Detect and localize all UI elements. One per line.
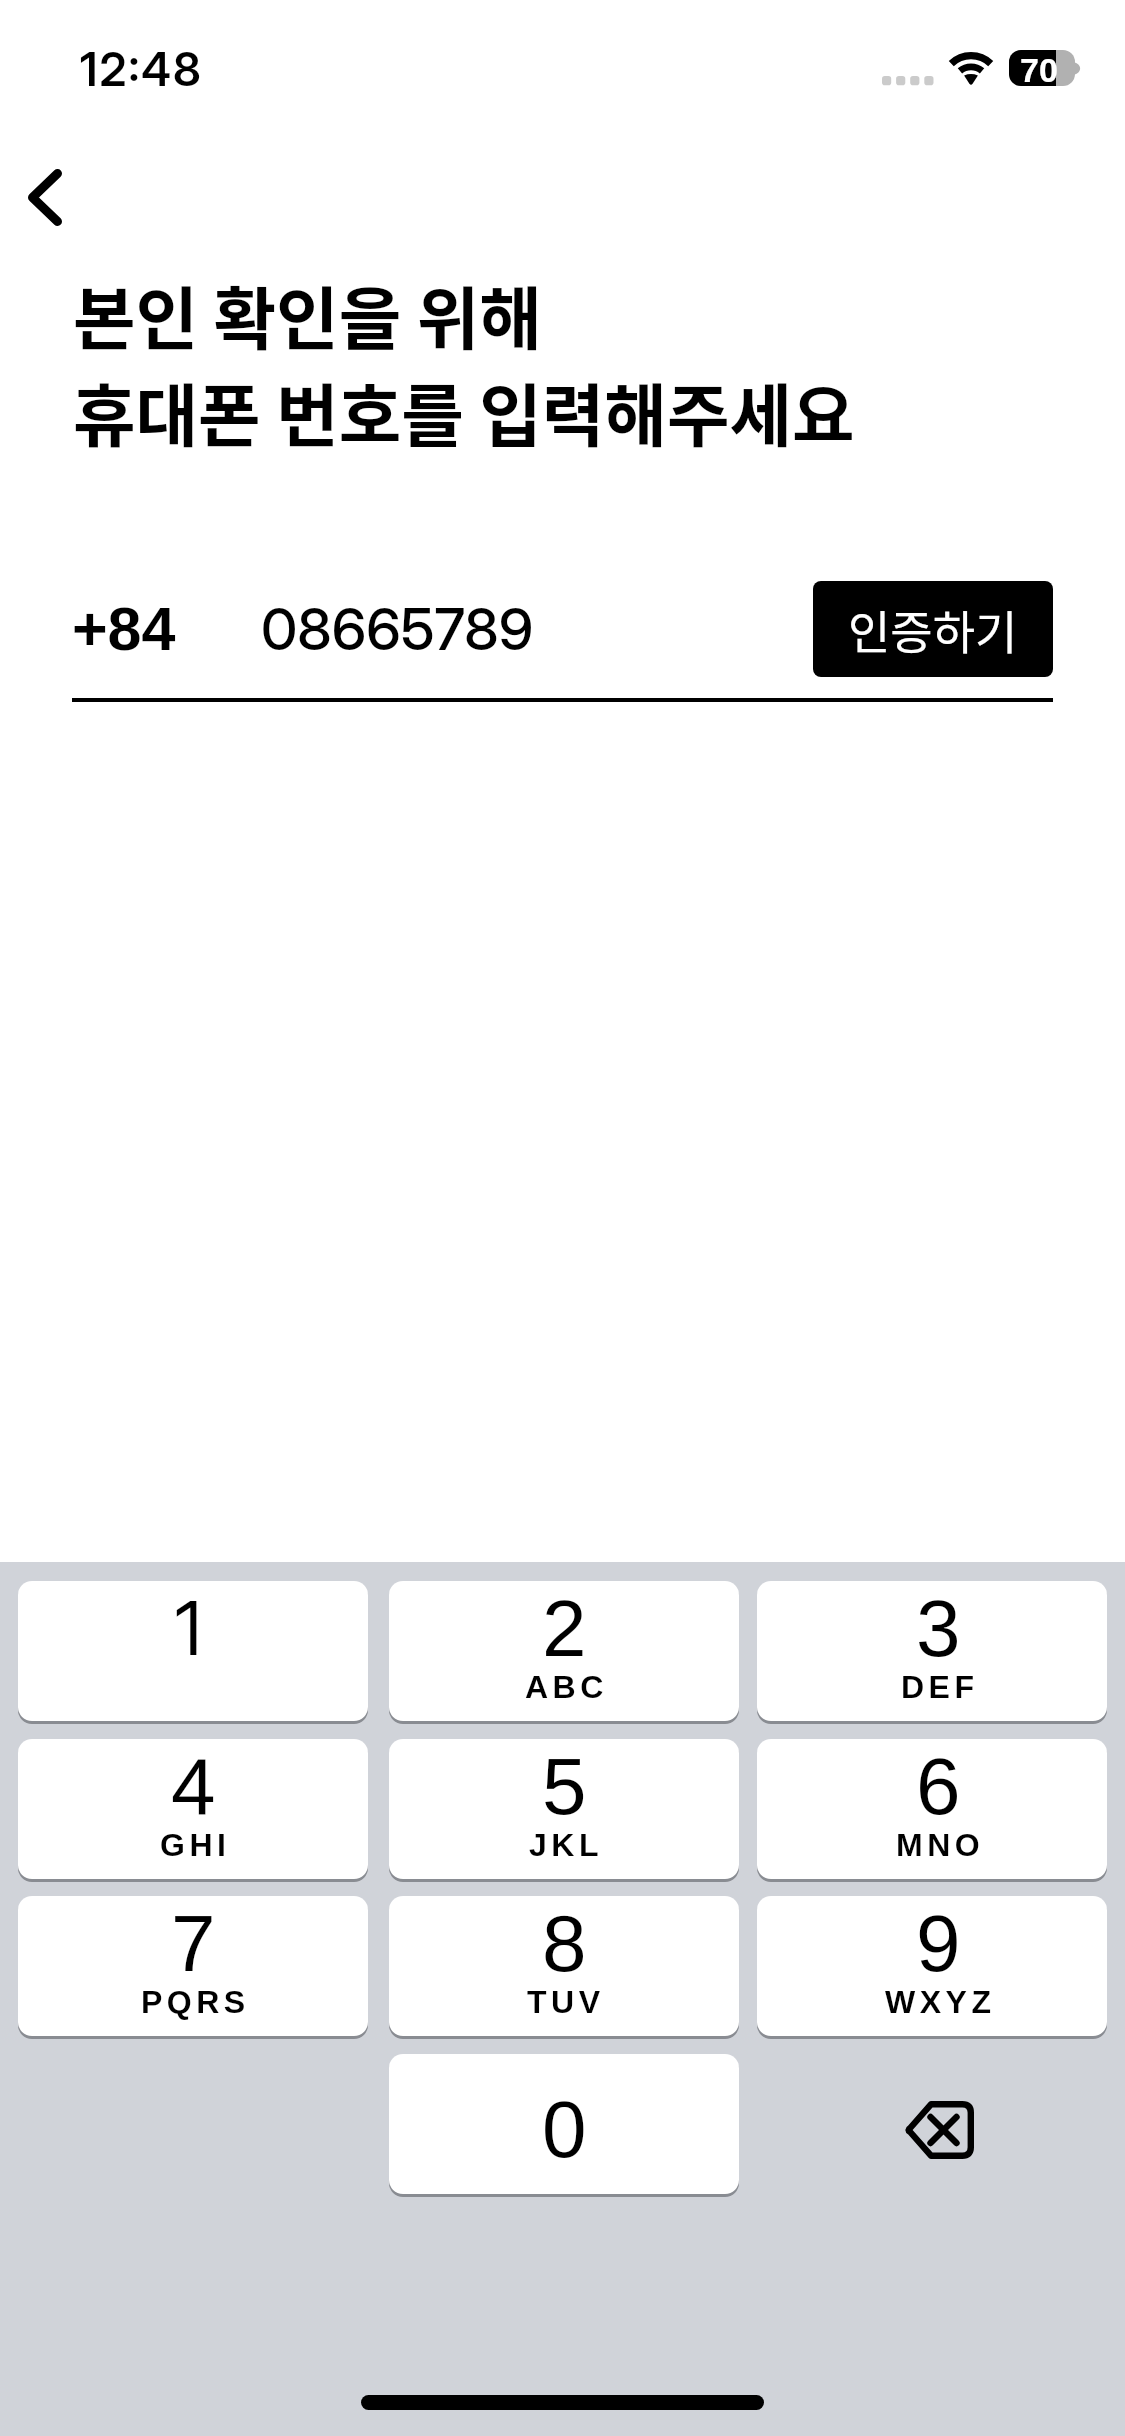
- staticText: 3: [916, 1584, 961, 1673]
- staticText: 6: [916, 1742, 961, 1831]
- staticText: ABC: [525, 1669, 608, 1705]
- staticText: PQRS: [141, 1984, 250, 2020]
- staticText: 인증하기: [848, 596, 1018, 663]
- staticText: 5: [542, 1742, 587, 1831]
- staticText: 휴대폰 번호를 입력해주세요: [73, 362, 855, 460]
- staticText: JKL: [529, 1827, 603, 1863]
- staticText: 본인 확인을 위해: [73, 265, 542, 363]
- staticText: WXYZ: [885, 1984, 996, 2020]
- button[interactable]: 2: [389, 1581, 739, 1721]
- staticText: 12:48: [80, 41, 203, 97]
- button[interactable]: 9: [757, 1896, 1107, 2036]
- button[interactable]: 인증하기: [813, 581, 1053, 677]
- staticText: +84: [72, 595, 176, 663]
- staticText: 0: [542, 2085, 587, 2174]
- staticText: 7: [171, 1899, 216, 1988]
- staticText: TUV: [527, 1984, 605, 2020]
- staticText: 70: [1020, 51, 1058, 86]
- staticText: 2: [542, 1584, 587, 1673]
- button[interactable]: Back: [0, 140, 122, 254]
- staticText: GHI: [160, 1827, 231, 1863]
- staticText: 4: [171, 1742, 216, 1831]
- button[interactable]: 5: [389, 1739, 739, 1879]
- button[interactable]: 4: [18, 1739, 368, 1879]
- button[interactable]: 6: [757, 1739, 1107, 1879]
- button[interactable]: 1: [18, 1581, 368, 1721]
- button[interactable]: Backspace: [757, 2054, 1107, 2194]
- staticText: 1: [175, 1583, 202, 1673]
- button[interactable]: 8: [389, 1896, 739, 2036]
- staticText: 8: [542, 1899, 587, 1988]
- staticText: DEF: [901, 1669, 979, 1705]
- staticText: 08665789: [261, 594, 534, 664]
- staticText: MNO: [896, 1827, 985, 1863]
- button[interactable]: 3: [757, 1581, 1107, 1721]
- button[interactable]: 0: [389, 2054, 739, 2194]
- button[interactable]: 7: [18, 1896, 368, 2036]
- staticText: 9: [916, 1899, 961, 1988]
